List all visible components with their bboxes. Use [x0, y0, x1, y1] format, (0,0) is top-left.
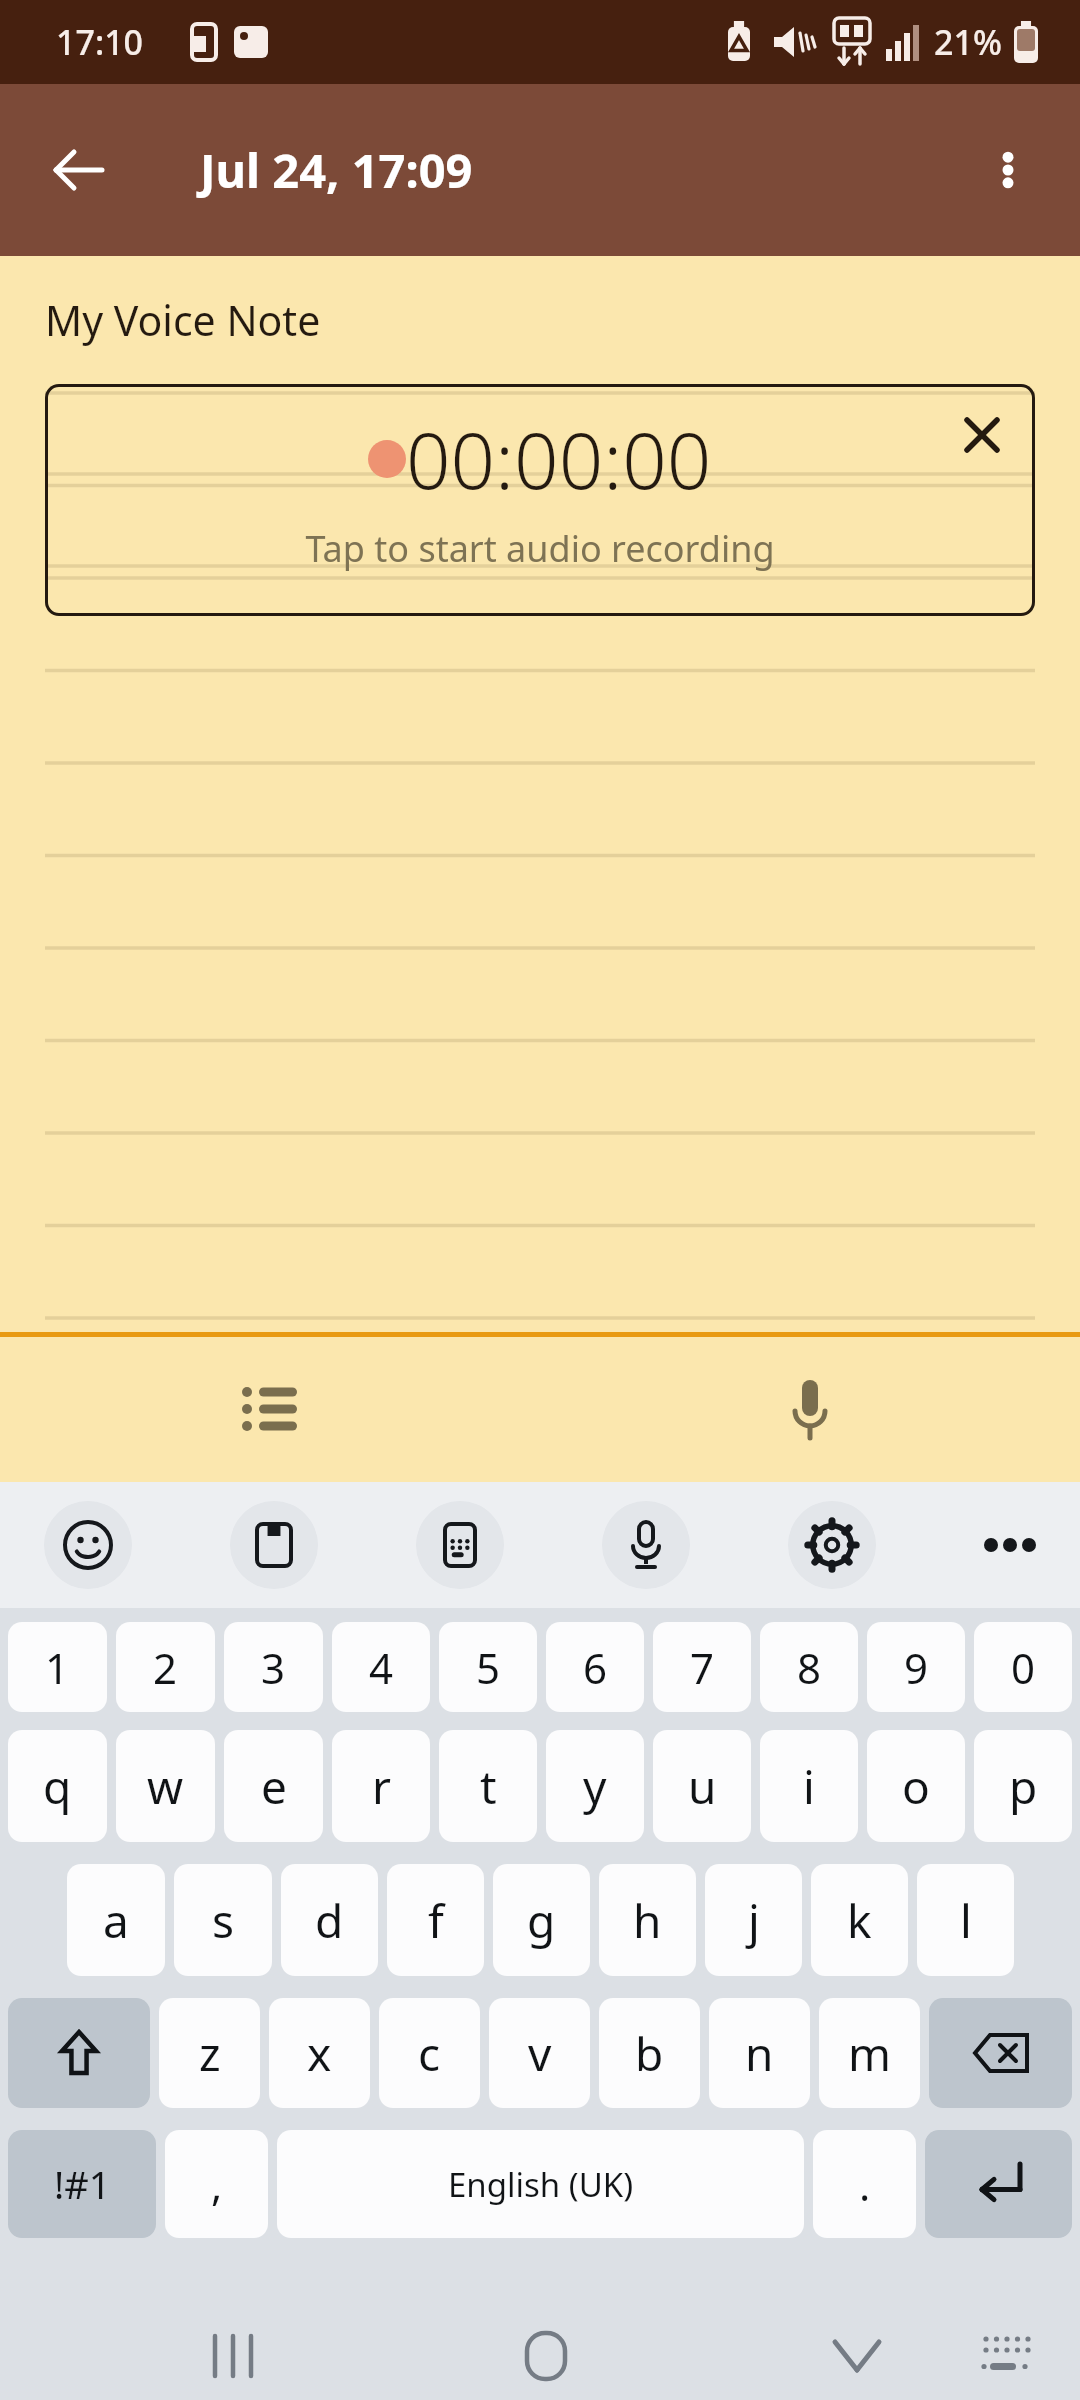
button[interactable]: Home: [481, 2312, 611, 2400]
staticText: b: [635, 2022, 664, 2085]
button[interactable]: l: [917, 1864, 1014, 1976]
staticText: 7: [690, 1639, 715, 1696]
button[interactable]: x: [269, 1998, 370, 2108]
button[interactable]: 9: [867, 1622, 965, 1712]
button[interactable]: .: [813, 2130, 916, 2238]
button[interactable]: More: [974, 1509, 1046, 1581]
button[interactable]: u: [653, 1730, 751, 1842]
staticText: c: [418, 2022, 441, 2085]
staticText: z: [199, 2022, 221, 2085]
staticText: 4: [369, 1639, 394, 1696]
staticText: Tap to start audio recording: [305, 524, 775, 573]
button[interactable]: 5: [439, 1622, 537, 1712]
button[interactable]: f: [387, 1864, 484, 1976]
button[interactable]: s: [174, 1864, 272, 1976]
button[interactable]: g: [493, 1864, 590, 1976]
staticText: 3: [261, 1639, 286, 1696]
staticText: English (UK): [448, 2162, 634, 2207]
button[interactable]: n: [709, 1998, 810, 2108]
staticText: ,: [211, 2156, 223, 2213]
staticText: 17:10: [56, 19, 144, 65]
button[interactable]: m: [819, 1998, 920, 2108]
button[interactable]: Checklist: [0, 1337, 540, 1482]
button[interactable]: q: [8, 1730, 107, 1842]
button[interactable]: z: [159, 1998, 260, 2108]
button[interactable]: Voice recording: [540, 1337, 1080, 1482]
staticText: s: [212, 1889, 235, 1952]
button[interactable]: ,: [165, 2130, 268, 2238]
staticText: h: [633, 1889, 662, 1952]
button[interactable]: English (UK): [277, 2130, 804, 2238]
button[interactable]: 7: [653, 1622, 751, 1712]
staticText: n: [745, 2022, 774, 2085]
button[interactable]: 3: [224, 1622, 323, 1712]
button[interactable]: 00:00:00: [45, 384, 1035, 616]
staticText: i: [803, 1755, 815, 1818]
button[interactable]: j: [705, 1864, 802, 1976]
button[interactable]: 0: [974, 1622, 1072, 1712]
button[interactable]: d: [281, 1864, 378, 1976]
staticText: w: [147, 1755, 184, 1818]
staticText: x: [307, 2022, 332, 2085]
button[interactable]: 8: [760, 1622, 858, 1712]
staticText: e: [261, 1755, 287, 1818]
staticText: 5: [476, 1639, 501, 1696]
staticText: 1: [45, 1639, 70, 1696]
staticText: Jul 24, 17:09: [200, 138, 473, 202]
button[interactable]: r: [332, 1730, 430, 1842]
staticText: o: [902, 1755, 930, 1818]
button[interactable]: w: [116, 1730, 215, 1842]
button[interactable]: y: [546, 1730, 644, 1842]
button[interactable]: v: [489, 1998, 590, 2108]
button[interactable]: t: [439, 1730, 537, 1842]
button[interactable]: Shift: [8, 1998, 150, 2108]
button[interactable]: !#1: [8, 2130, 156, 2238]
button[interactable]: Clipboard: [230, 1501, 318, 1589]
button[interactable]: 6: [546, 1622, 644, 1712]
staticText: 0: [1011, 1639, 1036, 1696]
button[interactable]: 1: [8, 1622, 107, 1712]
button[interactable]: Settings: [788, 1501, 876, 1589]
staticText: l: [960, 1889, 972, 1952]
staticText: 2: [153, 1639, 178, 1696]
staticText: 00:00:00: [406, 406, 712, 512]
button[interactable]: Backspace: [929, 1998, 1072, 2108]
button[interactable]: Hide keyboard: [792, 2312, 922, 2400]
staticText: d: [315, 1889, 344, 1952]
button[interactable]: 4: [332, 1622, 430, 1712]
staticText: t: [480, 1755, 497, 1818]
button[interactable]: i: [760, 1730, 858, 1842]
button[interactable]: Keyboard switcher: [952, 2312, 1062, 2400]
button[interactable]: o: [867, 1730, 965, 1842]
staticText: k: [847, 1889, 872, 1952]
staticText: 6: [583, 1639, 608, 1696]
staticText: q: [43, 1755, 72, 1818]
button[interactable]: k: [811, 1864, 908, 1976]
button[interactable]: Back: [30, 122, 126, 218]
button[interactable]: Enter: [925, 2130, 1072, 2238]
staticText: 9: [904, 1639, 929, 1696]
button[interactable]: b: [599, 1998, 700, 2108]
button[interactable]: p: [974, 1730, 1072, 1842]
staticText: My Voice Note: [45, 292, 321, 348]
staticText: 21%: [934, 19, 1002, 65]
button[interactable]: e: [224, 1730, 323, 1842]
button[interactable]: Voice input: [602, 1501, 690, 1589]
button[interactable]: Recents: [170, 2312, 300, 2400]
staticText: .: [859, 2156, 871, 2213]
staticText: r: [372, 1755, 391, 1818]
button[interactable]: a: [67, 1864, 165, 1976]
staticText: u: [688, 1755, 717, 1818]
staticText: m: [848, 2022, 892, 2085]
button[interactable]: h: [599, 1864, 696, 1976]
button[interactable]: Close recorder: [943, 396, 1021, 474]
staticText: a: [103, 1889, 129, 1952]
button[interactable]: 2: [116, 1622, 215, 1712]
button[interactable]: Keypad: [416, 1501, 504, 1589]
button[interactable]: Emoji: [44, 1501, 132, 1589]
staticText: !#1: [54, 2158, 111, 2210]
staticText: y: [583, 1755, 607, 1818]
staticText: 8: [797, 1639, 822, 1696]
button[interactable]: c: [379, 1998, 480, 2108]
button[interactable]: More options: [960, 122, 1056, 218]
